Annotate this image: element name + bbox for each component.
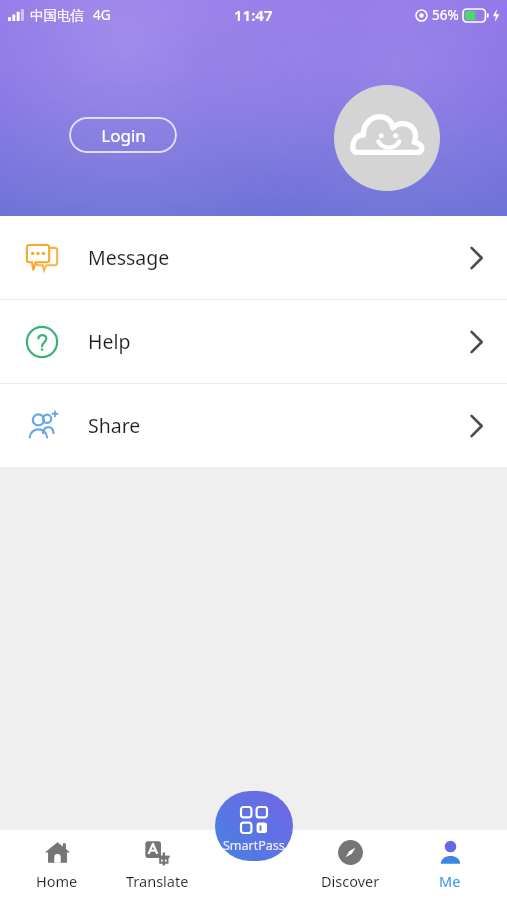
staticText: 中国电信 <box>30 7 84 24</box>
button[interactable]: Message <box>0 216 507 299</box>
button[interactable]: Help <box>0 300 507 383</box>
staticText: 4G <box>93 6 111 24</box>
staticText: Me <box>439 871 461 891</box>
staticText: Translate <box>126 871 189 891</box>
button[interactable]: Share <box>0 384 507 467</box>
button[interactable]: Me <box>407 833 493 897</box>
staticText: Home <box>36 871 78 891</box>
button[interactable]: Translate <box>114 833 200 897</box>
button[interactable]: Home <box>14 833 100 897</box>
staticText: Discover <box>321 871 380 891</box>
staticText: Help <box>88 328 131 355</box>
staticText: 11:47 <box>234 5 273 25</box>
staticText: Share <box>88 412 141 439</box>
staticText: Login <box>101 124 146 147</box>
button[interactable]: Discover <box>307 833 393 897</box>
button[interactable]: SmartPass <box>215 791 293 861</box>
staticText: Message <box>88 244 170 271</box>
staticText: SmartPass <box>223 837 285 854</box>
staticText: 56% <box>432 6 459 24</box>
button[interactable]: Login <box>69 117 177 153</box>
button[interactable]: Profile avatar <box>334 85 440 191</box>
